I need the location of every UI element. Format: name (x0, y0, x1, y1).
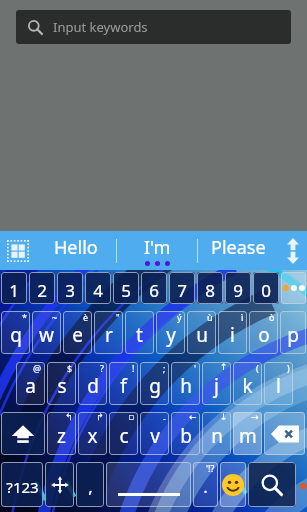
button[interactable]: k (233, 362, 262, 405)
button[interactable]: 6 (141, 272, 167, 304)
staticText: ! (132, 362, 135, 374)
button[interactable]: . (193, 462, 218, 507)
button[interactable]: 1 (1, 272, 27, 304)
button[interactable]: d (78, 362, 107, 405)
staticText: ý (177, 311, 182, 323)
staticText: ì (241, 311, 244, 323)
staticText: z (57, 423, 66, 449)
button[interactable]: 0 (253, 272, 279, 304)
staticText: y (166, 322, 176, 348)
staticText: ~ (52, 311, 58, 323)
button[interactable]: g (140, 362, 169, 405)
button[interactable]: Please (198, 231, 278, 270)
staticText: ; (163, 362, 166, 374)
staticText: p (287, 322, 299, 348)
staticText: i (230, 322, 235, 348)
button[interactable]: x (78, 412, 107, 455)
staticText: k (242, 373, 253, 399)
button[interactable]: Input keywords (16, 10, 291, 44)
staticText: 5 (121, 279, 131, 302)
staticText: 1 (9, 279, 19, 302)
button[interactable]: j (202, 362, 231, 405)
staticText: " (116, 311, 120, 323)
button[interactable]: p (280, 311, 306, 354)
button[interactable]: m (233, 412, 262, 455)
button[interactable]: n (202, 412, 231, 455)
button[interactable]: 9 (225, 272, 251, 304)
button[interactable]: y (156, 311, 185, 354)
button[interactable]: w (32, 311, 61, 354)
staticText: u (196, 322, 208, 348)
button[interactable]: Keyboard menu (0, 231, 36, 270)
staticText: 9 (233, 279, 243, 302)
staticText: I'm (144, 235, 171, 260)
staticText: d (87, 373, 99, 399)
staticText: o (258, 322, 270, 348)
staticText: f (120, 373, 127, 399)
button[interactable]: Expand suggestions (278, 231, 307, 270)
button[interactable]: u (187, 311, 216, 354)
staticText: w (39, 322, 54, 348)
staticText: c (119, 423, 129, 449)
staticText: x (87, 423, 98, 449)
staticText: t (136, 322, 143, 348)
button[interactable] (106, 462, 191, 507)
button[interactable] (45, 462, 74, 507)
button[interactable] (1, 412, 45, 455)
staticText: ' (194, 362, 197, 374)
button[interactable]: z (47, 412, 76, 455)
staticText: s (57, 373, 67, 399)
button[interactable] (281, 272, 306, 304)
button[interactable]: r (94, 311, 123, 354)
staticText: 8 (205, 279, 215, 302)
button[interactable]: f (109, 362, 138, 405)
staticText: 2 (37, 279, 47, 302)
staticText: g (149, 373, 161, 399)
button[interactable]: 3 (57, 272, 83, 304)
staticText: - (163, 412, 166, 424)
button[interactable]: v (140, 412, 169, 455)
staticText: ù (207, 311, 213, 323)
button[interactable]: 4 (85, 272, 111, 304)
button[interactable] (220, 462, 246, 507)
staticText: 0 (261, 279, 271, 302)
button[interactable]: Hello (36, 231, 116, 270)
button[interactable] (248, 462, 296, 507)
button[interactable]: I'm (117, 231, 197, 270)
staticText: $ (67, 362, 73, 374)
button[interactable]: t (125, 311, 154, 354)
staticText: a (25, 373, 36, 399)
staticText: * (22, 311, 27, 323)
staticText: Hello (54, 235, 98, 260)
staticText: ) (287, 362, 290, 374)
staticText: Please (211, 235, 266, 260)
button[interactable] (264, 412, 305, 455)
staticText: h (180, 373, 192, 399)
button[interactable]: 7 (169, 272, 195, 304)
staticText: r (105, 322, 113, 348)
staticText: v (150, 423, 160, 449)
staticText: q (10, 322, 22, 348)
staticText: ?123 (6, 477, 39, 497)
button[interactable]: s (47, 362, 76, 405)
staticText: 4 (93, 279, 103, 302)
button[interactable]: q (1, 311, 30, 354)
button[interactable]: h (171, 362, 200, 405)
button[interactable]: o (249, 311, 278, 354)
button[interactable]: i (218, 311, 247, 354)
button[interactable]: ?123 (1, 462, 43, 507)
staticText: → (251, 412, 259, 422)
button[interactable]: , (76, 462, 104, 507)
button[interactable]: b (171, 412, 200, 455)
button[interactable]: c (109, 412, 138, 455)
staticText: ← (189, 412, 197, 422)
button[interactable]: 8 (197, 272, 223, 304)
button[interactable]: l (264, 362, 293, 405)
button[interactable]: 5 (113, 272, 139, 304)
staticText: b (180, 423, 192, 449)
button[interactable]: e (63, 311, 92, 354)
staticText: '!? (206, 462, 215, 474)
button[interactable]: a (16, 362, 45, 405)
button[interactable]: 2 (29, 272, 55, 304)
staticText: m (239, 423, 257, 449)
